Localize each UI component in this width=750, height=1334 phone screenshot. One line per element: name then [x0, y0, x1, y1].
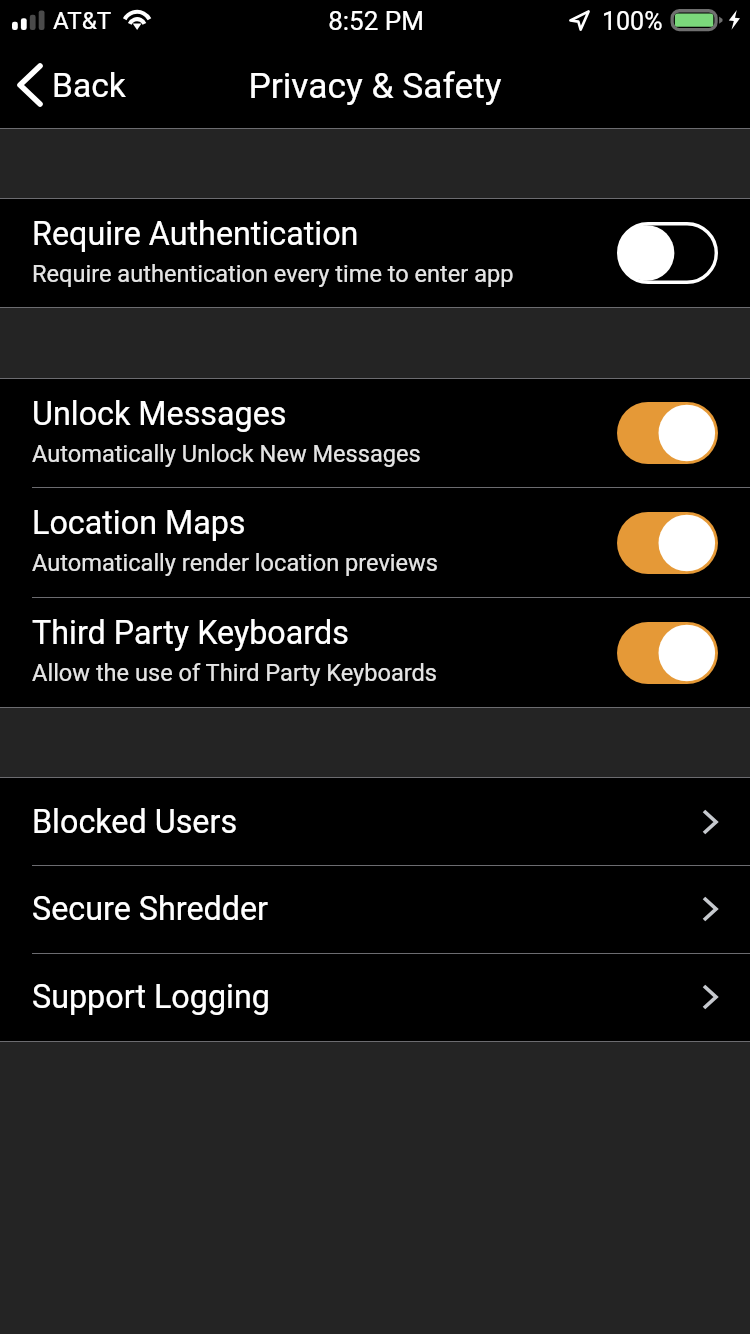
other: Battery 100 percent: [668, 8, 724, 33]
button[interactable]: Location Maps: [0, 488, 750, 598]
staticText: Back: [52, 66, 126, 105]
button[interactable]: Third Party Keyboards: [0, 598, 750, 707]
staticText: Support Logging: [32, 978, 702, 1016]
staticText: Secure Shredder: [32, 890, 702, 928]
button[interactable]: Back: [0, 63, 142, 107]
button[interactable]: Toggle off: [617, 222, 718, 284]
button[interactable]: Support Logging: [0, 953, 750, 1041]
button[interactable]: Toggle on: [617, 402, 718, 464]
staticText: Automatically render location previews: [32, 549, 438, 577]
staticText: 8:52 PM: [1, 6, 750, 36]
staticText: Require authentication every time to ent…: [32, 260, 514, 288]
staticText: Require Authentication: [32, 215, 359, 253]
button[interactable]: Unlock Messages: [0, 379, 750, 487]
other: Cellular signal: [12, 9, 45, 30]
staticText: Blocked Users: [32, 803, 702, 841]
staticText: Location Maps: [32, 504, 246, 542]
button[interactable]: Toggle on: [617, 622, 718, 684]
button[interactable]: Blocked Users: [0, 778, 750, 865]
button[interactable]: Secure Shredder: [0, 865, 750, 953]
staticText: Unlock Messages: [32, 395, 287, 433]
other: Wi-Fi: [120, 7, 154, 33]
staticText: 100%: [602, 7, 663, 36]
staticText: Automatically Unlock New Messages: [32, 440, 421, 468]
staticText: Privacy & Safety: [0, 65, 750, 106]
staticText: Third Party Keyboards: [32, 614, 349, 652]
staticText: Allow the use of Third Party Keyboards: [32, 659, 438, 687]
staticText: AT&T: [53, 7, 112, 35]
other: Location: [570, 11, 589, 30]
button[interactable]: Require Authentication: [0, 199, 750, 307]
button[interactable]: Toggle on: [617, 512, 718, 574]
